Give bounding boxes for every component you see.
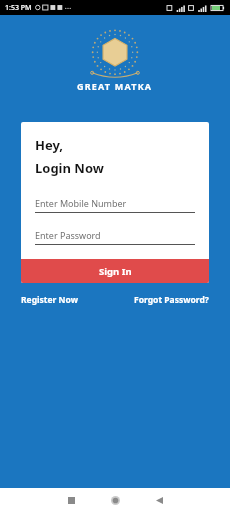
staticText: Login Now — [35, 159, 104, 177]
button[interactable]: Enter Password — [35, 229, 195, 245]
button[interactable]: Register Now — [21, 294, 78, 306]
staticText: Forgot Password? — [134, 294, 209, 306]
staticText: Sign In — [99, 265, 132, 278]
staticText: Enter Mobile Number — [35, 197, 127, 209]
button[interactable]: Recent apps — [49, 488, 93, 512]
staticText: Enter Password — [35, 229, 101, 241]
button[interactable]: Sign In — [21, 259, 209, 283]
staticText: Register Now — [21, 294, 78, 306]
button[interactable]: Enter Mobile Number — [35, 197, 195, 213]
staticText: 1:53 PM — [5, 3, 32, 13]
button[interactable]: Forgot Password? — [134, 294, 209, 306]
button[interactable]: Back — [137, 488, 181, 512]
staticText: Hey, — [35, 136, 64, 154]
button[interactable]: Home — [93, 488, 137, 512]
staticText: GREAT MATKA — [77, 80, 153, 92]
